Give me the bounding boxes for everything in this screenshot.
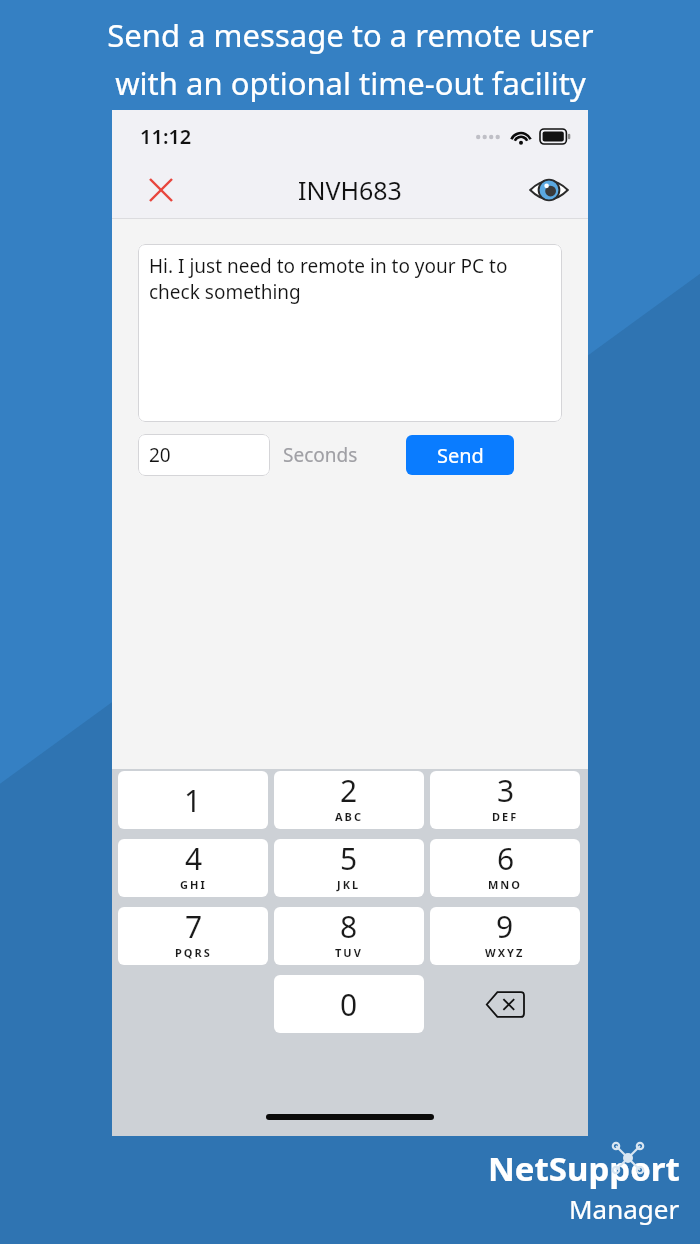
button[interactable]: 6: [430, 839, 580, 897]
staticText: 4: [185, 839, 203, 879]
button[interactable]: Hi. I just need to remote in to your PC …: [138, 244, 562, 422]
staticText: 11:12: [140, 123, 192, 150]
staticText: PQRS: [175, 945, 212, 960]
staticText: DEF: [492, 809, 519, 824]
staticText: 20: [149, 442, 171, 468]
staticText: JKL: [337, 877, 361, 892]
staticText: Manager: [569, 1191, 680, 1226]
button[interactable]: 8: [274, 907, 424, 965]
staticText: 7: [185, 907, 203, 947]
button[interactable]: 4: [118, 839, 268, 897]
staticText: Send a message to a remote user: [107, 14, 594, 56]
staticText: TUV: [335, 945, 363, 960]
staticText: 1: [184, 780, 202, 821]
button[interactable]: 0: [274, 975, 424, 1033]
button[interactable]: Close: [142, 171, 180, 209]
button[interactable]: 20: [138, 434, 270, 476]
staticText: Send: [437, 442, 484, 469]
button[interactable]: Backspace: [430, 975, 580, 1033]
staticText: Seconds: [283, 442, 358, 468]
staticText: GHI: [180, 877, 207, 892]
button[interactable]: 9: [430, 907, 580, 965]
staticText: 3: [497, 771, 515, 811]
staticText: NetSupport: [488, 1146, 680, 1191]
staticText: with an optional time-out facility: [115, 62, 586, 104]
staticText: 8: [340, 907, 358, 947]
staticText: 2: [340, 771, 358, 811]
staticText: INVH683: [298, 173, 402, 207]
button[interactable]: 2: [274, 771, 424, 829]
button[interactable]: 3: [430, 771, 580, 829]
button[interactable]: 5: [274, 839, 424, 897]
staticText: MNO: [488, 877, 523, 892]
staticText: 6: [497, 839, 515, 879]
staticText: WXYZ: [485, 945, 525, 960]
staticText: ABC: [335, 809, 363, 824]
staticText: 5: [340, 839, 358, 879]
button[interactable]: Preview: [528, 169, 570, 211]
button[interactable]: 1: [118, 771, 268, 829]
staticText: Hi. I just need to remote in to your PC …: [149, 253, 544, 304]
button[interactable]: 7: [118, 907, 268, 965]
button[interactable]: Send: [406, 435, 514, 475]
staticText: 0: [340, 984, 358, 1025]
staticText: 9: [496, 907, 514, 947]
